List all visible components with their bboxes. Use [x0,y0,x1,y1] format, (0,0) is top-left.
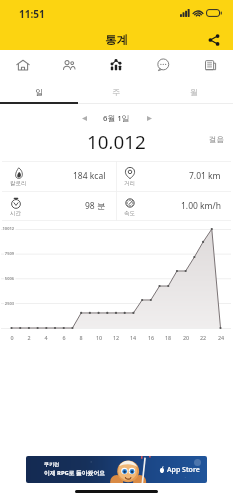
staticText: 거리 [124,180,135,187]
staticText: 0 [4,334,20,341]
staticText: 2503 [0,301,14,306]
button[interactable]: Chat [139,50,186,80]
button[interactable]: Previous day [76,110,92,126]
staticText: 10 [91,334,107,341]
button[interactable]: 거리 [116,161,231,191]
staticText: 5006 [0,276,14,281]
staticText: 6 [56,334,72,341]
staticText: 4 [38,334,54,341]
staticText: 이제 RPG로 돌아왔어요 [44,469,105,477]
button[interactable]: 시간 [2,191,116,221]
staticText: 칼로리 [10,180,27,187]
button[interactable]: Home [0,50,46,80]
button[interactable]: Statistics [92,50,139,80]
button[interactable]: Share [203,29,225,50]
staticText: 10012 [0,226,14,231]
staticText: 16 [143,334,159,341]
staticText: 통계 [105,33,128,47]
staticText: 주 [112,87,120,97]
button[interactable]: 월 [155,80,233,104]
staticText: 12 [108,334,124,341]
staticText: 22 [195,334,211,341]
staticText: 184 kcal [73,170,106,182]
staticText: 월 [190,87,198,97]
staticText: 걸음 [209,135,224,144]
staticText: 1.00 km/h [181,200,221,212]
button[interactable]: 주 [77,80,155,104]
staticText: 14 [125,334,141,341]
button[interactable]: 일 [0,80,77,104]
button[interactable]: 칼로리 [2,161,116,191]
staticText: 6월 1일 [103,113,130,124]
button[interactable]: 속도 [116,191,231,221]
staticText: 24 [213,334,229,341]
staticText: 속도 [124,210,135,217]
staticText: 98 분 [85,200,106,212]
staticText: 시간 [10,210,21,217]
button[interactable]: More [186,50,233,80]
button[interactable]: Friends [46,50,92,80]
button[interactable]: Next day [141,110,157,126]
staticText: 11:51 [19,7,45,21]
staticText: 7.01 km [189,170,221,182]
staticText: 18 [160,334,176,341]
staticText: 10,012 [87,129,146,149]
staticText: 8 [73,334,89,341]
staticText: 7509 [0,251,14,256]
staticText: 일 [35,87,43,97]
staticText: 쿠키런 [44,461,59,467]
staticText: App Store [167,465,200,475]
staticText: 20 [178,334,194,341]
staticText: 2 [21,334,37,341]
button[interactable]: 쿠키런 [26,456,207,483]
